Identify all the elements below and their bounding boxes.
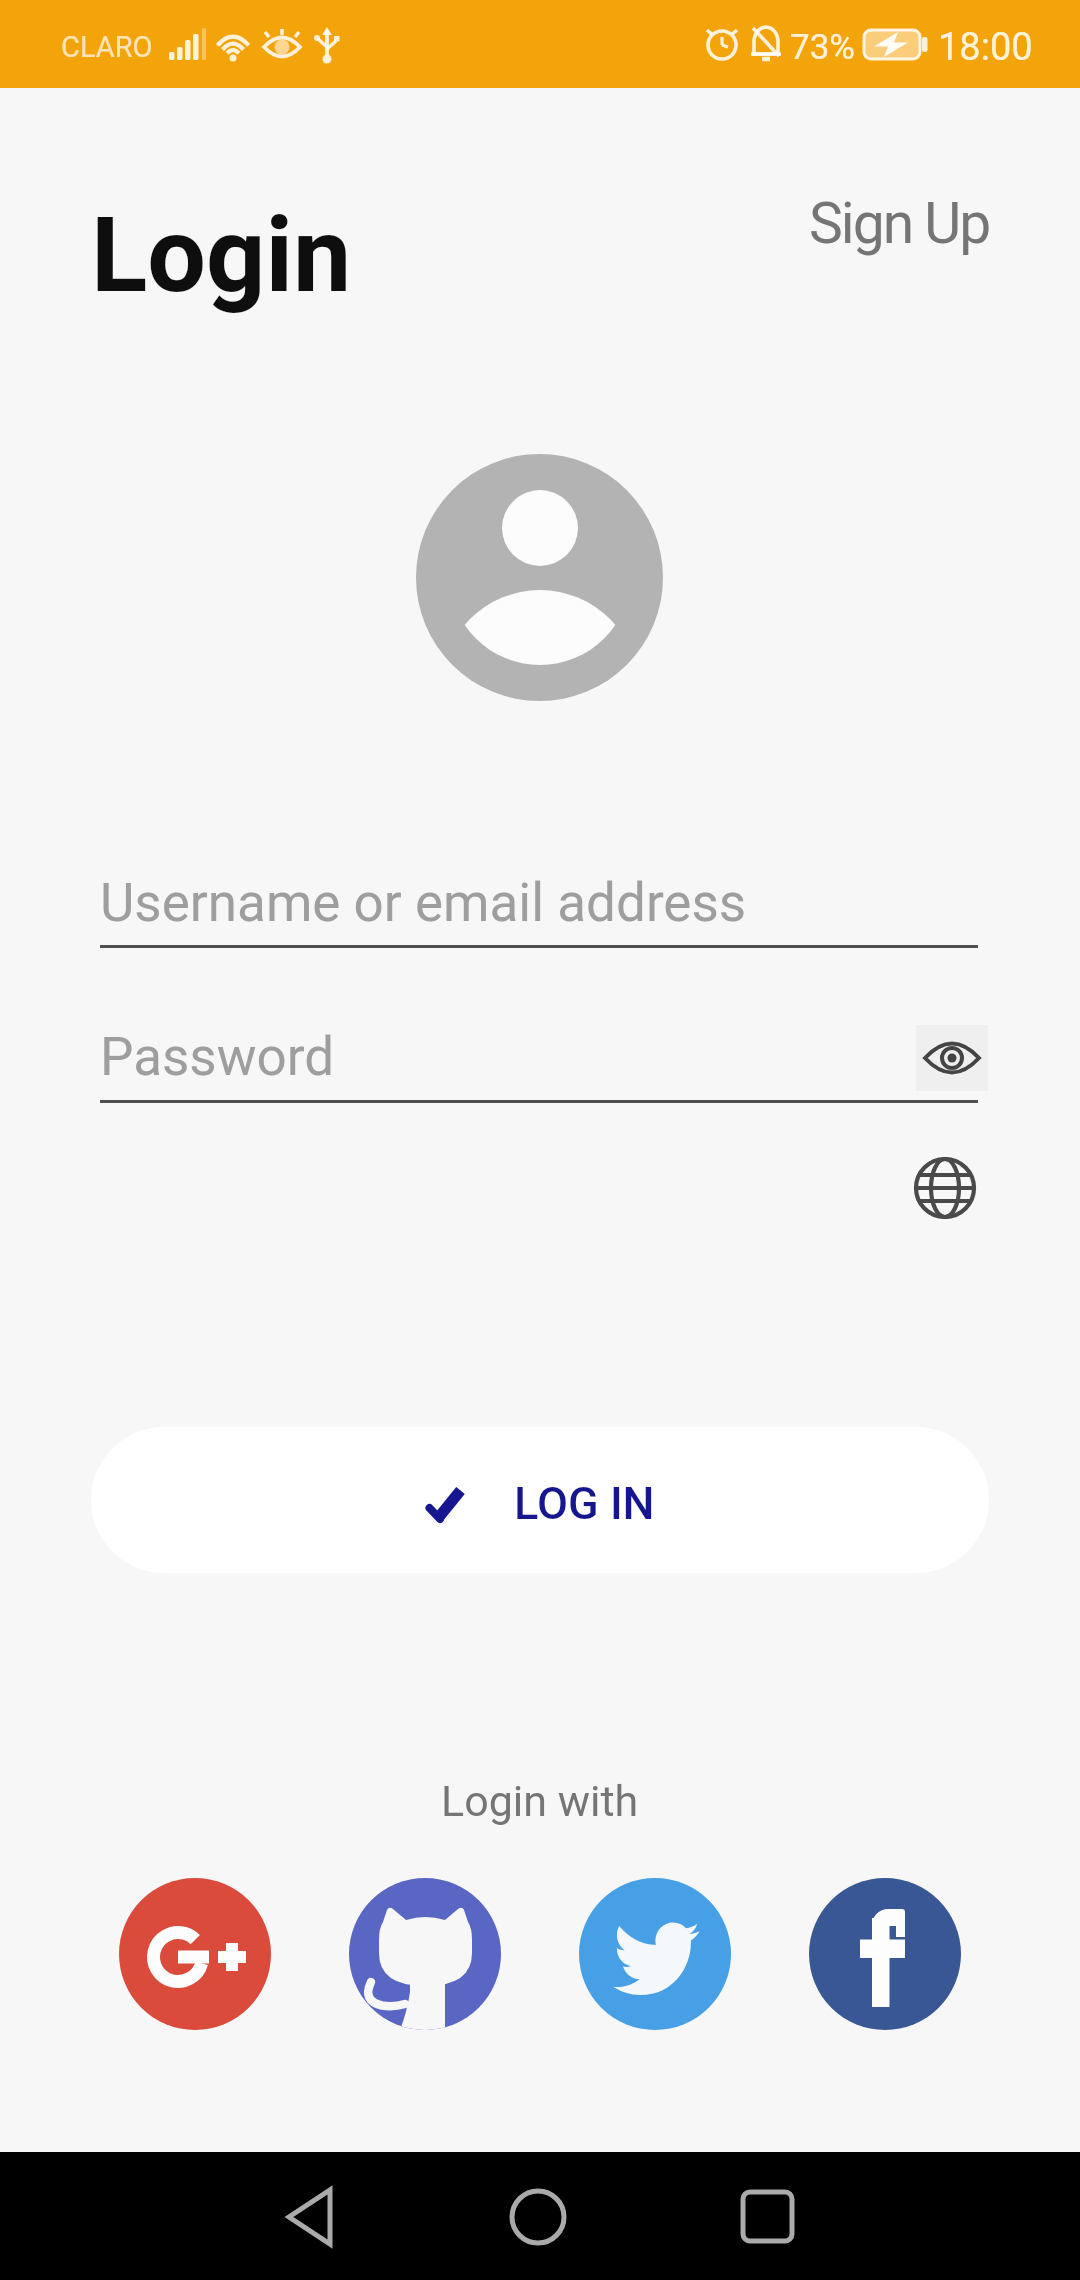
button[interactable] [727, 2177, 807, 2257]
button[interactable] [119, 1878, 271, 2030]
staticText: LOG IN [514, 1477, 655, 1530]
button[interactable] [579, 1878, 731, 2030]
button[interactable] [809, 1878, 961, 2030]
button[interactable] [912, 1155, 978, 1221]
staticText: CLARO [61, 30, 153, 64]
button[interactable]: Username or email address [100, 860, 978, 948]
staticText: Sign Up [809, 190, 990, 257]
staticText: 18:00 [938, 25, 1033, 70]
button[interactable] [270, 2177, 350, 2257]
button[interactable] [498, 2177, 578, 2257]
staticText: Login [91, 195, 352, 317]
button[interactable] [349, 1878, 501, 2030]
button[interactable]: Password [100, 1013, 978, 1101]
button[interactable]: Sign Up [780, 186, 990, 260]
staticText: Password [100, 1026, 335, 1088]
staticText: Login with [441, 1776, 639, 1826]
staticText: Username or email address [100, 872, 747, 934]
staticText: 73% [790, 27, 855, 68]
button[interactable]: LOG IN [91, 1427, 989, 1573]
button[interactable] [916, 1025, 988, 1091]
